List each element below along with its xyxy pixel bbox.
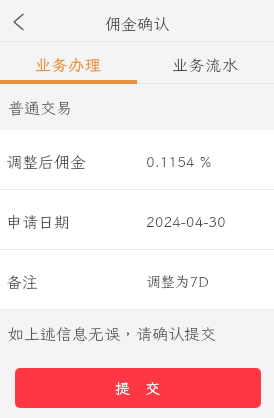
staticText: 业务办理 xyxy=(35,54,102,75)
button[interactable]: Back xyxy=(0,2,38,40)
button[interactable]: 调整后佣金 xyxy=(0,130,274,189)
button[interactable]: 申请日期 xyxy=(0,190,274,249)
staticText: 业务流水 xyxy=(172,54,239,75)
button[interactable]: 业务流水 xyxy=(137,42,274,84)
staticText: 2024-04-30 xyxy=(146,212,226,231)
staticText: 调整后佣金 xyxy=(6,151,146,172)
button[interactable]: 业务办理 xyxy=(0,42,137,84)
button[interactable]: 备注 xyxy=(0,250,274,309)
staticText: 0.1154 % xyxy=(146,152,212,171)
button[interactable]: 提 交 xyxy=(15,368,261,408)
staticText: 备注 xyxy=(6,271,146,292)
staticText: 申请日期 xyxy=(6,211,146,232)
staticText: 佣金确认 xyxy=(105,13,170,34)
staticText: 如上述信息无误，请确认提交 xyxy=(8,323,217,344)
staticText: 普通交易 xyxy=(8,97,73,118)
staticText: 调整为7D xyxy=(146,272,209,291)
staticText: 提 交 xyxy=(115,379,161,399)
